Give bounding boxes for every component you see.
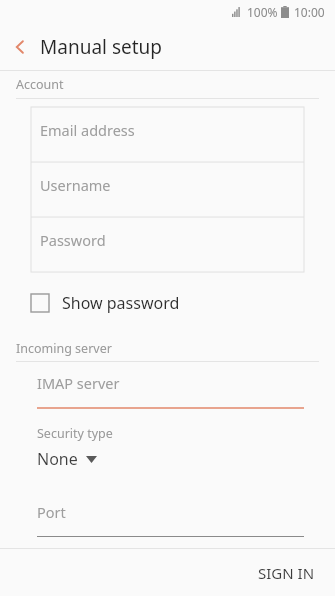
button[interactable]: Back [0,24,40,70]
staticText: Show password [62,292,180,314]
staticText: Password [40,230,106,250]
staticText: 10:00 [294,4,325,20]
staticText: Incoming server [16,340,112,357]
staticText: Email address [40,120,135,140]
staticText: Security type [37,425,113,442]
button[interactable]: IMAP server [0,362,335,409]
staticText: IMAP server [37,373,120,393]
button[interactable]: Username [31,162,304,217]
button[interactable]: SIGN IN [238,551,335,595]
button[interactable]: Password [31,217,304,272]
button[interactable]: Security type [0,425,335,470]
staticText: Port [37,502,66,522]
button[interactable]: Email address [31,107,304,162]
staticText: Account [16,76,64,93]
button[interactable]: Show password [0,286,335,320]
staticText: Username [40,175,111,195]
staticText: None [37,448,78,470]
staticText: SIGN IN [258,563,315,583]
staticText: Manual setup [40,34,162,60]
button[interactable]: Port [0,491,335,537]
staticText: 100% [247,4,278,20]
